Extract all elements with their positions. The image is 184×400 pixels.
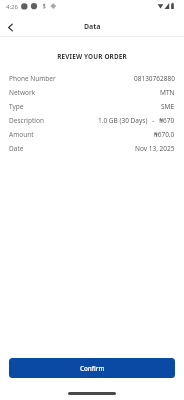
staticText: Description [9,116,44,125]
staticText: Network [9,88,36,97]
staticText: Amount [9,130,34,139]
staticText: SME [161,102,175,111]
staticText: REVIEW YOUR ORDER [0,52,184,61]
staticText: Type [9,102,24,111]
staticText: Phone Number [9,74,56,83]
staticText: Confirm [80,364,105,373]
staticText: Data [84,22,101,32]
staticText: ₦670.0 [154,130,175,139]
staticText: Date [9,144,24,153]
staticText: 08130762880 [134,74,175,83]
staticText: Nov 13, 2025 [135,144,175,153]
button[interactable]: Back [0,17,20,37]
staticText: 1.0 GB (30 Days) - ₦670 [98,116,175,125]
staticText: MTN [160,88,175,97]
staticText: 4:26 [6,2,19,10]
button[interactable]: Confirm [9,358,175,378]
